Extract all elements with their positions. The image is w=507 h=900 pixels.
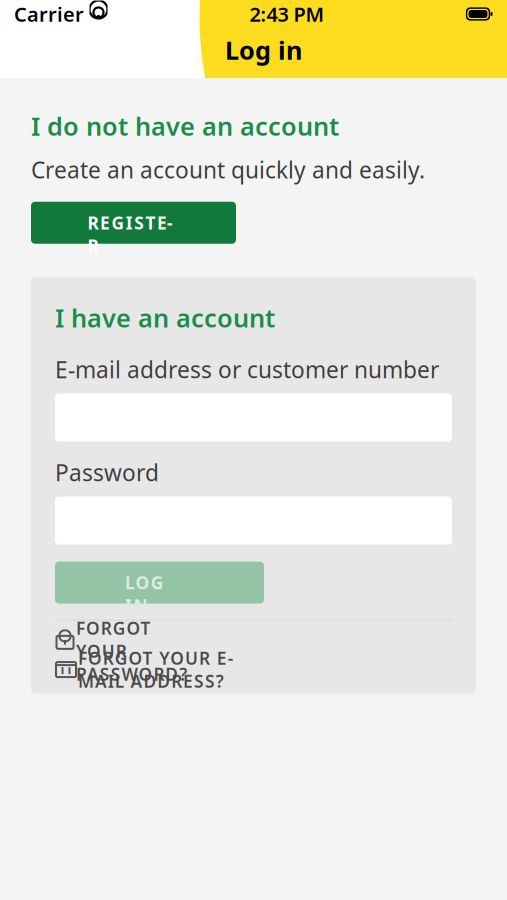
button[interactable]: FORGOT YOUR PASSWORD?	[55, 625, 452, 655]
staticText: I do not have an account	[31, 109, 339, 143]
button[interactable]: FORGOT YOUR E-MAIL ADDRESS?	[55, 655, 452, 685]
staticText: LOG IN	[125, 571, 194, 594]
staticText: FORGOT YOUR E-MAIL ADDRESS?	[78, 647, 280, 693]
staticText: Log in	[225, 33, 302, 67]
staticText: E-mail address or customer number	[55, 354, 439, 384]
staticText: Password	[55, 457, 159, 488]
button[interactable]: LOG IN	[55, 562, 264, 604]
staticText: I have an account	[55, 301, 275, 334]
button[interactable]: REGISTER	[31, 202, 236, 244]
staticText: REGISTER	[88, 211, 179, 234]
staticText: Carrier	[14, 1, 84, 27]
staticText: Create an account quickly and easily.	[31, 155, 425, 185]
staticText: FORGOT YOUR PASSWORD?	[76, 617, 208, 663]
staticText: 2:43 PM	[249, 1, 324, 27]
